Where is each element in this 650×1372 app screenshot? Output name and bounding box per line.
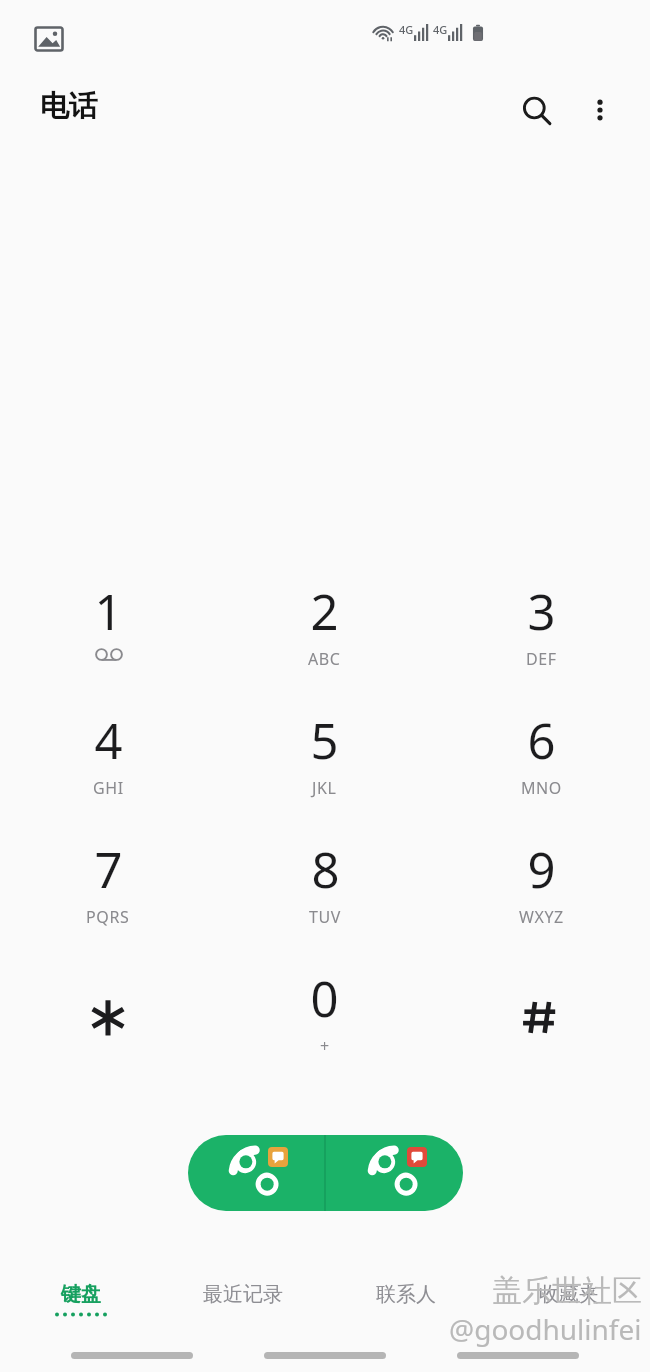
staticText: @goodhulinfei [449, 1310, 642, 1348]
button[interactable]: 4 [0, 693, 216, 822]
staticText: 4 [94, 707, 123, 774]
staticText: PQRS [86, 906, 130, 928]
staticText: GHI [93, 777, 124, 799]
button[interactable] [433, 951, 650, 1080]
staticText: WXYZ [519, 906, 564, 928]
button[interactable]: 8 [216, 822, 433, 951]
staticText: 8 [311, 836, 340, 903]
button[interactable] [0, 951, 216, 1080]
staticText: 联系人 [376, 1282, 436, 1307]
button[interactable]: Navigation [457, 1352, 579, 1359]
staticText: 盖乐世社区 [492, 1272, 642, 1310]
staticText: JKL [312, 777, 337, 799]
button[interactable]: 0 [216, 951, 433, 1080]
button[interactable]: 3 [433, 564, 650, 693]
button[interactable]: 收藏夹 [487, 1268, 650, 1334]
button[interactable]: Navigation [71, 1352, 193, 1359]
button[interactable]: 5 [216, 693, 433, 822]
staticText: + [320, 1035, 330, 1057]
button[interactable]: 联系人 [324, 1268, 487, 1334]
staticText: 5 [310, 707, 339, 774]
staticText: TUV [309, 906, 341, 928]
button[interactable]: Search [508, 82, 566, 140]
staticText: 3 [527, 578, 556, 645]
button[interactable]: Navigation [264, 1352, 386, 1359]
staticText: 电话 [40, 88, 98, 125]
staticText: 收藏夹 [539, 1282, 599, 1307]
staticText: 0 [310, 965, 339, 1032]
button[interactable]: More options [572, 82, 628, 138]
staticText: MNO [521, 777, 562, 799]
staticText: 2 [310, 578, 339, 645]
button[interactable]: 键盘 [0, 1268, 162, 1334]
button[interactable]: 6 [433, 693, 650, 822]
staticText: DEF [526, 648, 557, 670]
staticText: 7 [94, 836, 123, 903]
button[interactable]: 1 [0, 564, 216, 693]
button[interactable]: Call with SIM 2 [326, 1135, 463, 1211]
staticText: 1 [94, 578, 123, 645]
staticText: 4G [433, 22, 448, 37]
staticText: 最近记录 [203, 1282, 283, 1307]
button[interactable]: Call with SIM 1 [188, 1135, 324, 1211]
staticText: 6 [527, 707, 556, 774]
staticText: 键盘 [61, 1282, 101, 1307]
button[interactable]: 2 [216, 564, 433, 693]
staticText: ABC [308, 648, 341, 670]
button[interactable]: 7 [0, 822, 216, 951]
staticText: 9 [527, 836, 556, 903]
button[interactable]: 9 [433, 822, 650, 951]
button[interactable]: 最近记录 [162, 1268, 324, 1334]
staticText: 4G [399, 22, 414, 37]
